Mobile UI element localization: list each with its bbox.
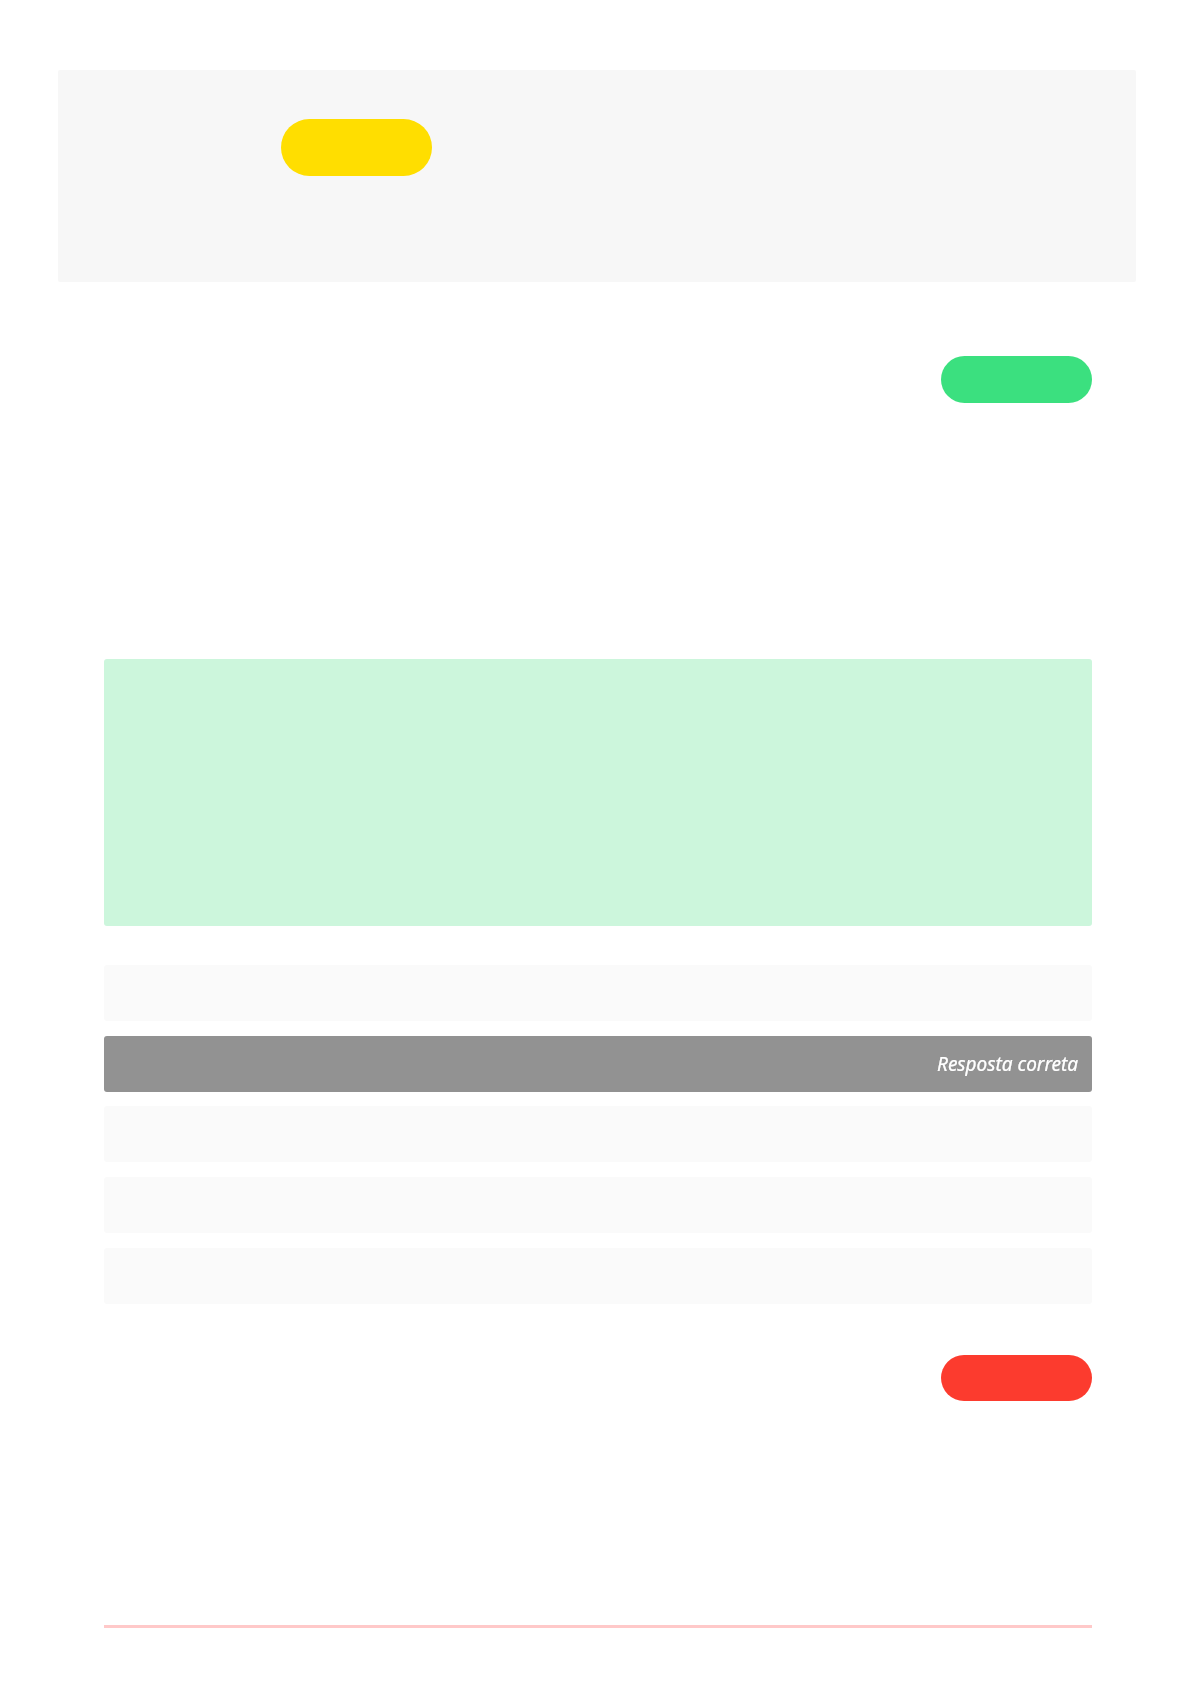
- button[interactable]: Resposta correta: [104, 1036, 1092, 1092]
- button[interactable]: Questao respondida: [941, 356, 1092, 403]
- staticText: Resposta correta: [937, 1051, 1079, 1077]
- button[interactable]: Questao errada: [941, 1355, 1092, 1401]
- button[interactable]: Pontuacao: [281, 119, 432, 176]
